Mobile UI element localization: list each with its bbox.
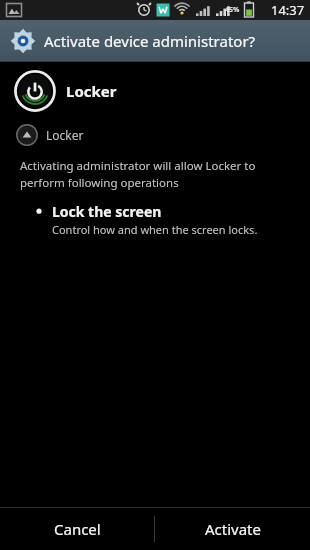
- button[interactable]: Activate: [155, 508, 310, 550]
- other: Collapse: [16, 124, 38, 146]
- staticText: Locker: [46, 127, 84, 143]
- staticText: Cancel: [54, 519, 101, 539]
- button[interactable]: Locker: [0, 62, 310, 120]
- staticText: Lock the screen: [52, 202, 162, 221]
- staticText: Control how and when the screen locks.: [52, 222, 258, 237]
- staticText: 45%: [225, 5, 240, 15]
- staticText: Activating administrator will allow Lock…: [20, 158, 256, 190]
- staticText: Activate: [205, 519, 261, 539]
- staticText: Activate device administrator?: [44, 31, 256, 51]
- staticText: Locker: [66, 81, 117, 101]
- staticText: 14:37: [271, 1, 305, 19]
- button[interactable]: Collapse: [0, 120, 310, 150]
- button[interactable]: Cancel: [0, 508, 154, 550]
